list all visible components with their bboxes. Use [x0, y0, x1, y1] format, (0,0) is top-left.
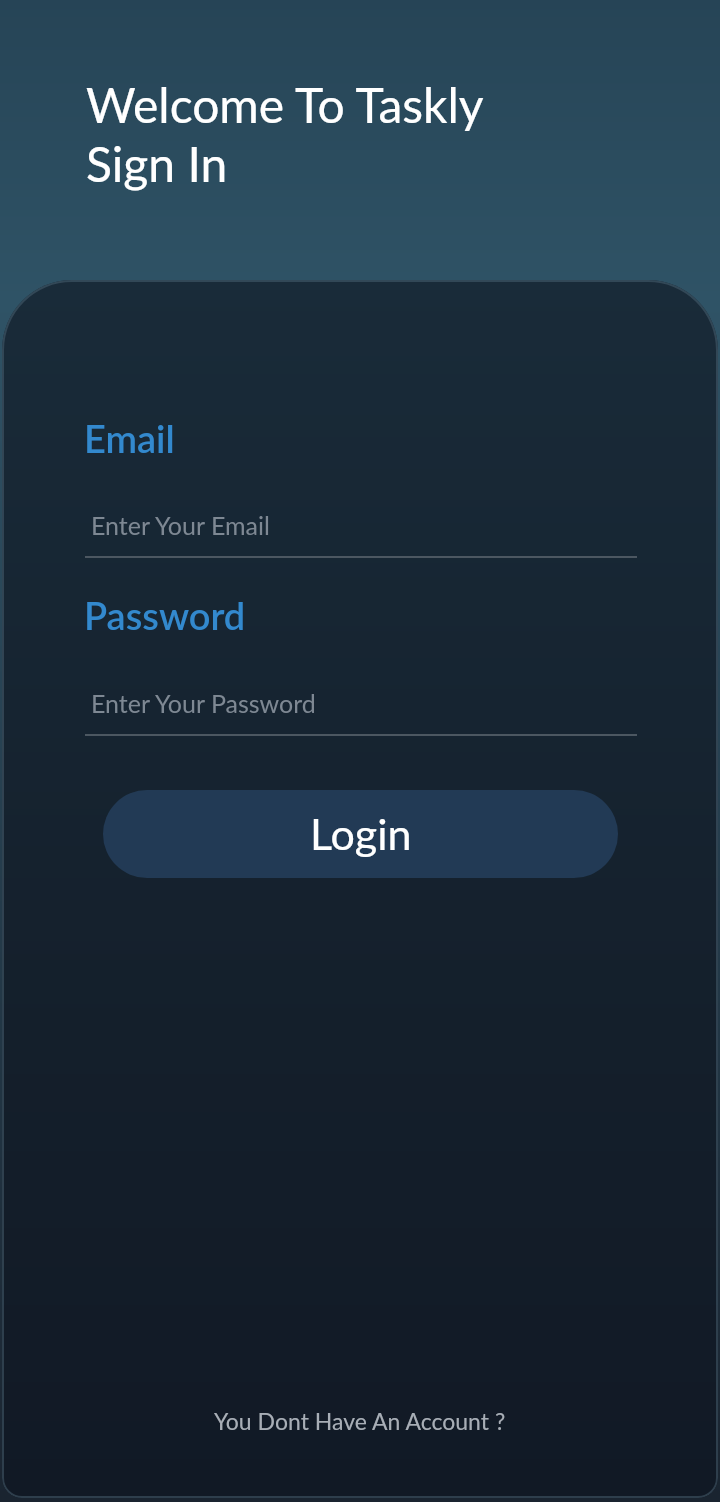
staticText: Sign In	[86, 135, 228, 193]
button[interactable]: You Dont Have An Account ?	[214, 1407, 506, 1435]
staticText: Login	[310, 808, 412, 860]
button[interactable]: Enter Your Email	[85, 498, 637, 558]
staticText: Email	[84, 415, 175, 461]
staticText: Enter Your Email	[91, 510, 270, 540]
staticText: Password	[84, 592, 246, 638]
button[interactable]: Login	[103, 790, 618, 878]
button[interactable]: Enter Your Password	[85, 676, 637, 736]
staticText: Enter Your Password	[91, 688, 316, 718]
staticText: Welcome To Taskly	[86, 76, 484, 134]
